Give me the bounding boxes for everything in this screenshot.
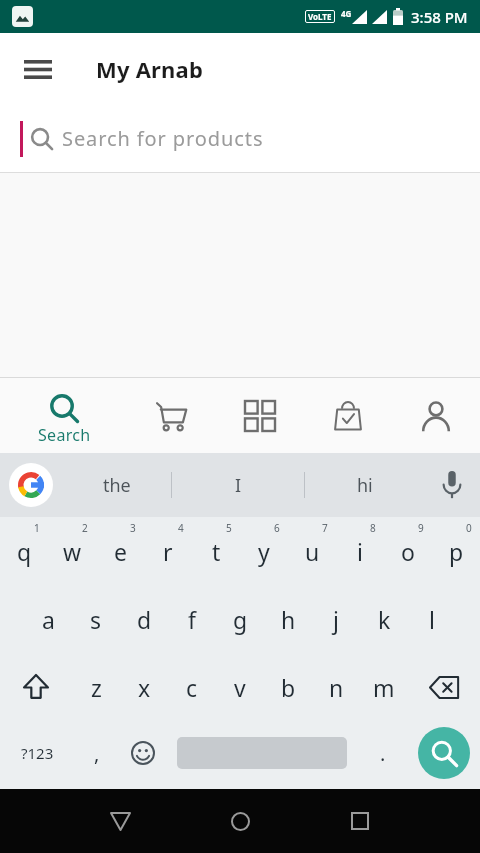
staticText: Search for products	[62, 125, 264, 152]
staticText: 3:58 PM	[411, 7, 468, 27]
staticText: n	[329, 672, 344, 703]
button[interactable]: d	[120, 585, 168, 653]
staticText: 3	[130, 521, 136, 535]
staticText: 5	[226, 521, 232, 535]
button[interactable]: l	[408, 585, 456, 653]
staticText: a	[42, 604, 55, 635]
staticText: ,	[94, 740, 100, 767]
button[interactable]: s	[72, 585, 120, 653]
button[interactable]	[0, 453, 62, 517]
staticText: p	[449, 536, 464, 567]
staticText: k	[378, 604, 391, 635]
button[interactable]: m	[360, 653, 408, 721]
staticText: hi	[357, 473, 373, 498]
button[interactable]: p	[432, 517, 480, 585]
button[interactable]: Search for products	[0, 105, 480, 172]
staticText: c	[186, 672, 198, 703]
staticText: d	[137, 604, 152, 635]
button[interactable]: i	[336, 517, 384, 585]
staticText: g	[233, 604, 248, 635]
button[interactable]	[60, 789, 180, 853]
button[interactable]: u	[288, 517, 336, 585]
staticText: 4G	[341, 8, 352, 19]
staticText: q	[17, 536, 32, 567]
button[interactable]: z	[72, 653, 120, 721]
button[interactable]	[120, 721, 166, 785]
button[interactable]: n	[312, 653, 360, 721]
button[interactable]: h	[264, 585, 312, 653]
button[interactable]: y	[240, 517, 288, 585]
button[interactable]	[0, 653, 72, 721]
staticText: o	[401, 536, 415, 567]
button[interactable]: Search	[0, 378, 128, 453]
staticText: the	[103, 473, 131, 498]
staticText: 8	[370, 521, 376, 535]
button[interactable]: hi	[305, 453, 424, 517]
button[interactable]: t	[192, 517, 240, 585]
staticText: b	[281, 672, 296, 703]
staticText: 2	[82, 521, 88, 535]
staticText: Search	[38, 424, 91, 446]
button[interactable]: ?123	[0, 721, 74, 785]
button[interactable]: ,	[74, 721, 120, 785]
button[interactable]: r	[144, 517, 192, 585]
button[interactable]	[408, 653, 480, 721]
staticText: h	[281, 604, 296, 635]
staticText: 6	[274, 521, 280, 535]
staticText: e	[114, 536, 127, 567]
staticText: 9	[418, 521, 424, 535]
button[interactable]	[424, 453, 480, 517]
staticText: ?123	[21, 743, 54, 763]
button[interactable]: j	[312, 585, 360, 653]
button[interactable]: k	[360, 585, 408, 653]
button[interactable]: w	[48, 517, 96, 585]
staticText: r	[163, 536, 173, 567]
button[interactable]: f	[168, 585, 216, 653]
button[interactable]	[300, 789, 420, 853]
staticText: m	[373, 672, 395, 703]
button[interactable]	[177, 721, 347, 785]
button[interactable]	[180, 789, 300, 853]
button[interactable]: e	[96, 517, 144, 585]
staticText: w	[63, 536, 82, 567]
button[interactable]: a	[24, 585, 72, 653]
staticText: y	[258, 536, 270, 567]
staticText: i	[357, 536, 363, 567]
button[interactable]: q	[0, 517, 48, 585]
staticText: x	[138, 672, 151, 703]
button[interactable]	[304, 378, 392, 453]
button[interactable]: o	[384, 517, 432, 585]
staticText: 7	[322, 521, 328, 535]
staticText: v	[234, 672, 246, 703]
button[interactable]: the	[62, 453, 171, 517]
staticText: .	[380, 740, 386, 767]
button[interactable]	[407, 721, 480, 785]
button[interactable]: x	[120, 653, 168, 721]
staticText: 4	[178, 521, 184, 535]
staticText: t	[212, 536, 221, 567]
button[interactable]: b	[264, 653, 312, 721]
button[interactable]	[128, 378, 216, 453]
button[interactable]: v	[216, 653, 264, 721]
button[interactable]: c	[168, 653, 216, 721]
staticText: f	[188, 604, 196, 635]
button[interactable]	[392, 378, 480, 453]
staticText: 0	[466, 521, 472, 535]
staticText: l	[429, 604, 435, 635]
button[interactable]	[24, 49, 64, 89]
button[interactable]	[216, 378, 304, 453]
staticText: z	[91, 672, 102, 703]
staticText: 1	[34, 521, 40, 535]
button[interactable]: g	[216, 585, 264, 653]
staticText: I	[235, 473, 242, 498]
button[interactable]: I	[172, 453, 304, 517]
staticText: s	[90, 604, 102, 635]
staticText: My Arnab	[96, 54, 204, 84]
staticText: u	[305, 536, 320, 567]
staticText: j	[333, 604, 339, 635]
button[interactable]: .	[359, 721, 407, 785]
staticText: VoLTE	[308, 11, 332, 22]
